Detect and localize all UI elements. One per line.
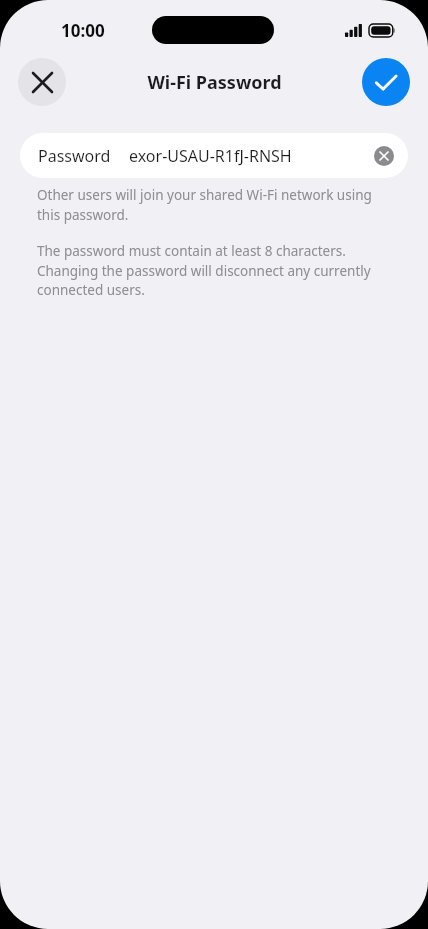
button[interactable]: Close: [18, 58, 66, 106]
staticText: Wi-Fi Password: [147, 70, 282, 95]
staticText: 10:00: [61, 19, 105, 42]
button[interactable]: Password: [20, 133, 408, 178]
button[interactable]: Clear password: [374, 146, 394, 166]
button[interactable]: Confirm: [362, 58, 410, 106]
staticText: Other users will join your shared Wi-Fi …: [37, 186, 398, 224]
staticText: The password must contain at least 8 cha…: [37, 242, 398, 299]
staticText: Password: [38, 145, 111, 167]
staticText: exor-USAU-R1fJ-RNSH: [129, 145, 374, 167]
